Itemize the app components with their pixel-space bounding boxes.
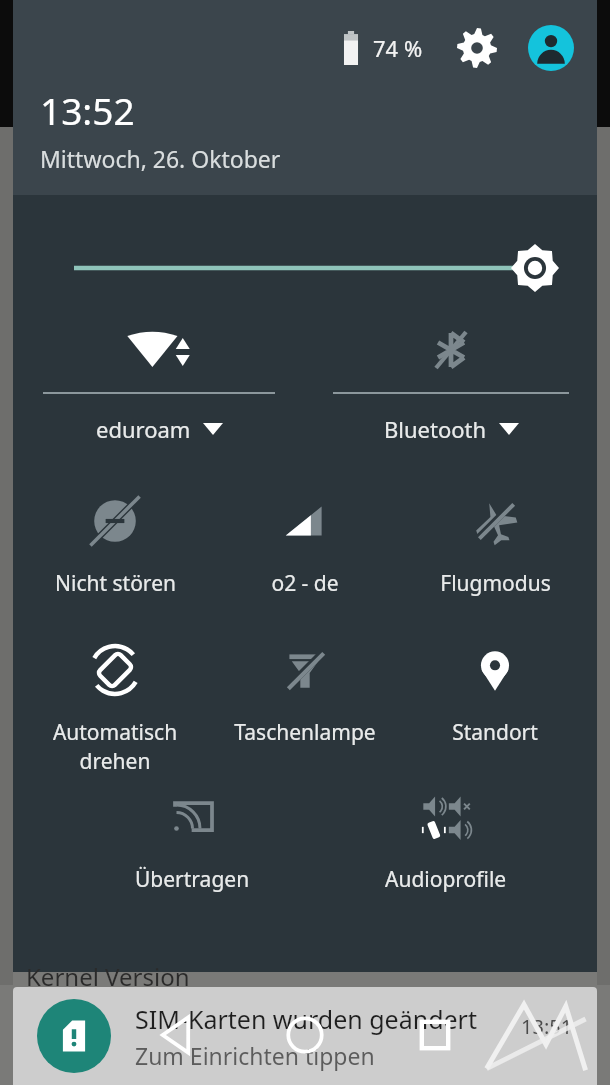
- button[interactable]: Audioprofile: [348, 793, 543, 894]
- button[interactable]: Back: [140, 1000, 210, 1070]
- staticText: 13:51: [521, 1013, 573, 1040]
- staticText: Mittwoch, 26. Oktober: [40, 143, 281, 174]
- staticText: Audioprofile: [385, 865, 507, 894]
- button[interactable]: eduroam: [13, 307, 305, 444]
- staticText: 13:52: [40, 85, 135, 135]
- staticText: Standort: [452, 718, 538, 747]
- staticText: Taschenlampe: [234, 718, 376, 747]
- button[interactable]: Nicht stören: [20, 495, 210, 598]
- staticText: Übertragen: [135, 865, 250, 894]
- staticText: Kernel Version: [26, 960, 190, 993]
- staticText: o2 - de: [271, 569, 339, 598]
- button[interactable]: Brightness: [13, 233, 597, 303]
- button[interactable]: User profile: [525, 22, 577, 74]
- staticText: Automatisch drehen: [20, 718, 210, 776]
- button[interactable]: SIM-Karten wurden geändert: [13, 987, 597, 1085]
- button[interactable]: Home: [270, 1000, 340, 1070]
- button[interactable]: Bluetooth: [305, 307, 597, 444]
- button[interactable]: Standort: [400, 644, 590, 747]
- button[interactable]: Taschenlampe: [210, 644, 400, 747]
- staticText: Bluetooth: [384, 414, 487, 444]
- staticText: SIM-Karten wurden geändert: [135, 1002, 477, 1036]
- button[interactable]: Recents: [400, 1000, 470, 1070]
- button[interactable]: Flugmodus: [400, 495, 590, 598]
- staticText: Zum Einrichten tippen: [135, 1040, 375, 1071]
- button[interactable]: Settings: [451, 22, 503, 74]
- staticText: 74 %: [373, 33, 423, 63]
- button[interactable]: o2 - de: [210, 495, 400, 598]
- staticText: Flugmodus: [440, 569, 551, 598]
- button[interactable]: Automatisch drehen: [20, 644, 210, 776]
- button[interactable]: Übertragen: [95, 793, 290, 894]
- staticText: eduroam: [96, 414, 191, 444]
- staticText: Nicht stören: [55, 569, 176, 598]
